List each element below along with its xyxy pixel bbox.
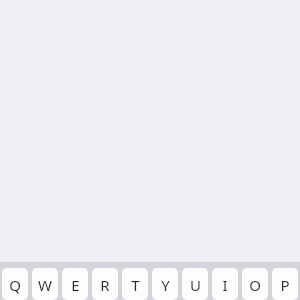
button[interactable]: R: [92, 268, 118, 300]
staticText: U: [190, 275, 201, 295]
button[interactable]: E: [62, 268, 88, 300]
staticText: W: [38, 275, 52, 295]
staticText: O: [249, 275, 261, 295]
button[interactable]: I: [212, 268, 238, 300]
button[interactable]: P: [272, 268, 298, 300]
button[interactable]: Q: [2, 268, 28, 300]
staticText: Y: [161, 275, 170, 295]
staticText: E: [71, 275, 80, 295]
button[interactable]: O: [242, 268, 268, 300]
staticText: P: [280, 275, 290, 295]
staticText: R: [100, 275, 110, 295]
staticText: I: [222, 275, 228, 295]
staticText: T: [131, 275, 140, 295]
button[interactable]: W: [32, 268, 58, 300]
button[interactable]: T: [122, 268, 148, 300]
button[interactable]: U: [182, 268, 208, 300]
staticText: Q: [9, 275, 21, 295]
button[interactable]: Y: [152, 268, 178, 300]
